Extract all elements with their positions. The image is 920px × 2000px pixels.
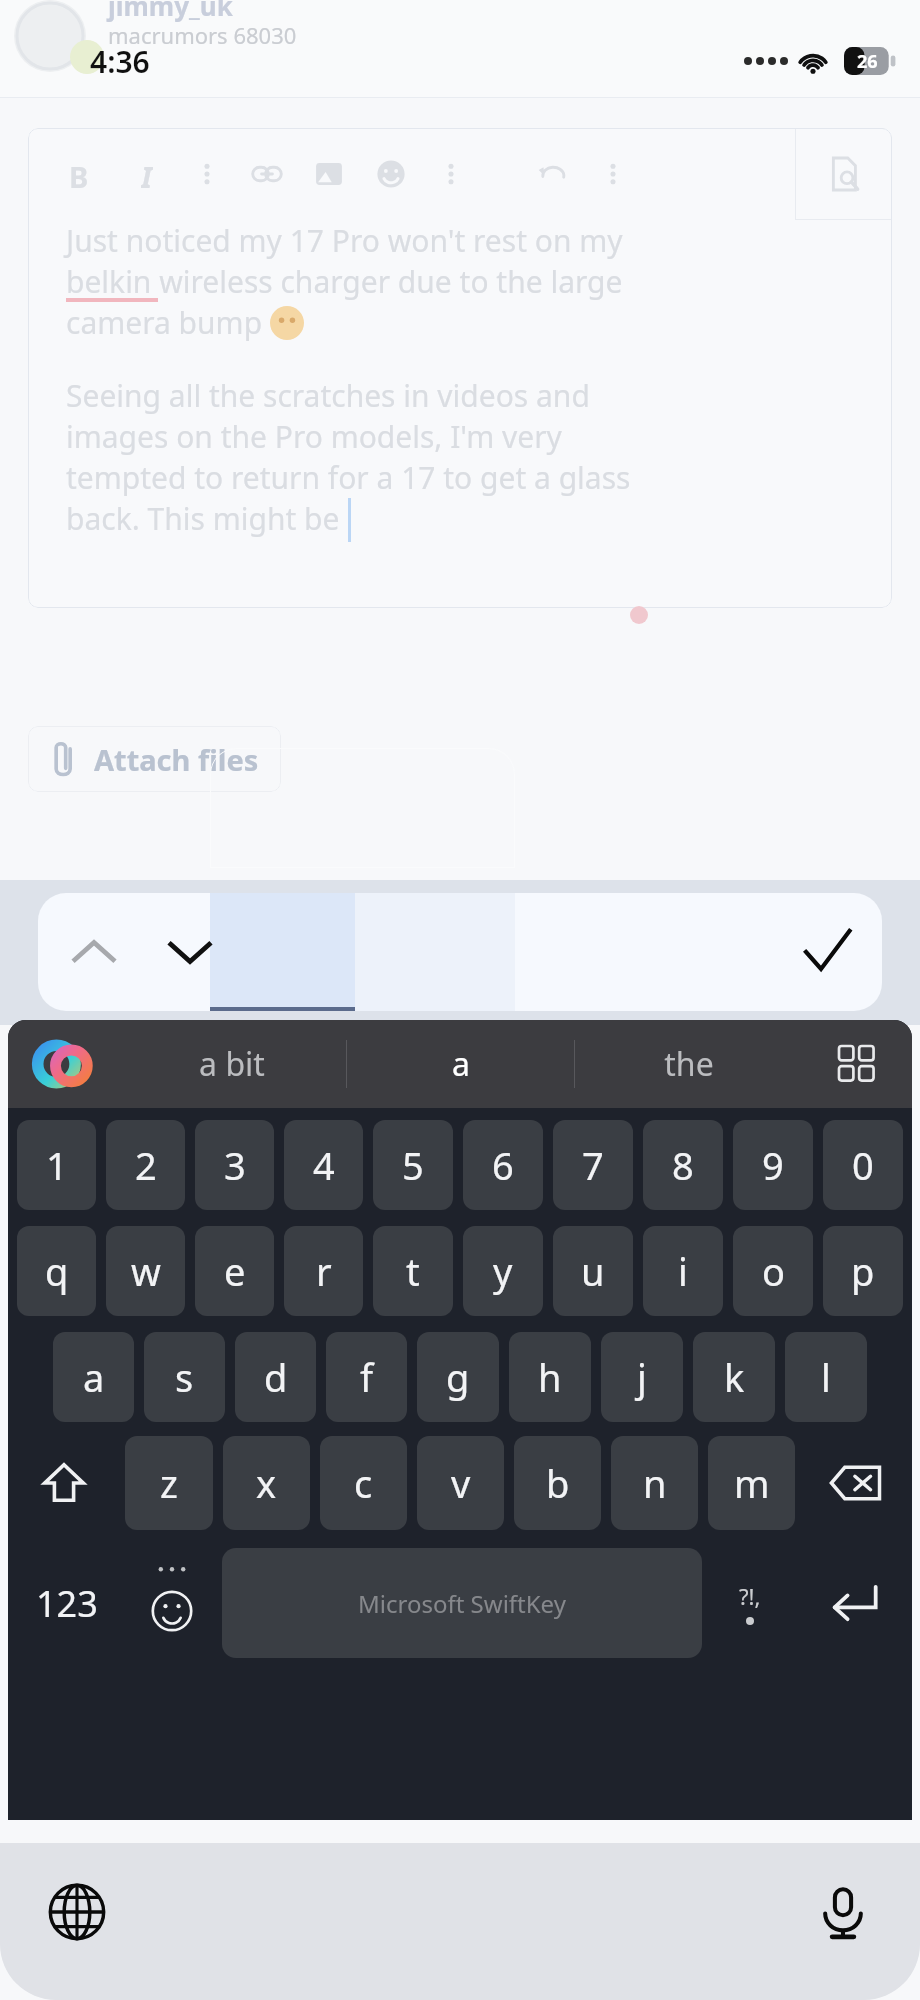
staticText: f	[360, 1351, 374, 1403]
button[interactable]: Microsoft SwiftKey	[222, 1548, 702, 1658]
button[interactable]: y	[463, 1226, 543, 1316]
button[interactable]: e	[195, 1226, 274, 1316]
button[interactable]: 2	[106, 1120, 185, 1210]
button[interactable]: Insert link	[246, 153, 288, 195]
button[interactable]: Voice input	[788, 1857, 898, 1967]
button[interactable]: 7	[553, 1120, 633, 1210]
button[interactable]: Emoji	[122, 1544, 222, 1662]
button[interactable]: k	[693, 1332, 775, 1422]
staticText: g	[446, 1351, 470, 1403]
button[interactable]: Insert image	[308, 153, 350, 195]
button[interactable]: Shift	[8, 1436, 120, 1530]
staticText: w	[131, 1245, 161, 1297]
button[interactable]: Enter	[798, 1544, 908, 1662]
staticText: p	[851, 1245, 875, 1297]
button[interactable]: s	[144, 1332, 225, 1422]
button[interactable]: Previous	[46, 893, 142, 1011]
button[interactable]: Backspace	[800, 1436, 912, 1530]
button[interactable]: a	[53, 1332, 134, 1422]
staticText: macrumors 68030	[108, 20, 297, 50]
staticText: a bit	[199, 1042, 265, 1086]
button[interactable]: m	[708, 1436, 795, 1530]
staticText: r	[316, 1245, 332, 1297]
staticText: v	[451, 1457, 471, 1509]
staticText: j	[637, 1351, 647, 1403]
staticText: jimmy_uk	[108, 0, 233, 23]
button[interactable]: r	[284, 1226, 363, 1316]
staticText: the	[664, 1042, 714, 1086]
button[interactable]: n	[611, 1436, 698, 1530]
button[interactable]: Attach files	[28, 726, 281, 792]
staticText: y	[493, 1245, 513, 1297]
button[interactable]: 0	[823, 1120, 903, 1210]
staticText: 3	[224, 1139, 246, 1191]
button[interactable]: Italic	[126, 153, 168, 195]
button[interactable]: t	[373, 1226, 453, 1316]
button[interactable]: 1	[17, 1120, 96, 1210]
staticText: camera bump	[66, 302, 270, 343]
button[interactable]: the	[575, 1020, 802, 1108]
staticText: h	[538, 1351, 562, 1403]
button[interactable]: b	[514, 1436, 601, 1530]
staticText: Seeing all the scratches in videos and	[66, 375, 590, 416]
staticText: B	[69, 157, 89, 191]
button[interactable]: 8	[643, 1120, 723, 1210]
button[interactable]: 5	[373, 1120, 453, 1210]
staticText: n	[643, 1457, 667, 1509]
button[interactable]: a	[347, 1020, 574, 1108]
button[interactable]: i	[643, 1226, 723, 1316]
staticText: I	[141, 157, 153, 191]
button[interactable]: u	[553, 1226, 633, 1316]
button[interactable]: Insert emoji	[370, 153, 412, 195]
staticText: 26	[857, 49, 878, 74]
staticText: belkin wireless charger due to the large	[66, 261, 623, 302]
button[interactable]: 3	[195, 1120, 274, 1210]
button[interactable]: q	[17, 1226, 96, 1316]
button[interactable]: 6	[463, 1120, 543, 1210]
button[interactable]: 4	[284, 1120, 363, 1210]
staticText: Microsoft SwiftKey	[358, 1587, 566, 1620]
staticText: c	[354, 1457, 373, 1509]
staticText: a	[452, 1042, 470, 1086]
button[interactable]: g	[417, 1332, 499, 1422]
button[interactable]: o	[733, 1226, 813, 1316]
staticText: 123	[36, 1579, 98, 1628]
button[interactable]: Next	[142, 893, 238, 1011]
button[interactable]: w	[106, 1226, 185, 1316]
button[interactable]: More text options	[186, 153, 228, 195]
staticText: 6	[492, 1139, 514, 1191]
button[interactable]: x	[223, 1436, 310, 1530]
staticText: images on the Pro models, I'm very	[66, 416, 562, 457]
button[interactable]: Preview	[795, 128, 892, 220]
button[interactable]: More insert options	[430, 153, 472, 195]
staticText: o	[762, 1245, 785, 1297]
staticText: e	[224, 1245, 246, 1297]
button[interactable]: z	[125, 1436, 213, 1530]
button[interactable]: Symbols	[702, 1544, 798, 1662]
staticText: l	[821, 1351, 831, 1403]
staticText: m	[734, 1457, 770, 1509]
button[interactable]: Done	[772, 893, 882, 1011]
staticText: Just noticed my 17 Pro won't rest on my	[66, 220, 623, 261]
button[interactable]: f	[326, 1332, 407, 1422]
button[interactable]: p	[823, 1226, 903, 1316]
button[interactable]: More	[592, 153, 634, 195]
button[interactable]: c	[320, 1436, 407, 1530]
staticText: ?!,	[739, 1581, 761, 1611]
staticText: z	[160, 1457, 178, 1509]
button[interactable]: Change keyboard language	[22, 1857, 132, 1967]
button[interactable]: d	[235, 1332, 316, 1422]
staticText: tempted to return for a 17 to get a glas…	[66, 457, 631, 498]
staticText: 4:36	[90, 41, 150, 82]
button[interactable]: Undo	[532, 153, 574, 195]
button[interactable]: 9	[733, 1120, 813, 1210]
staticText: 9	[762, 1139, 784, 1191]
button[interactable]: Toolbar	[802, 1020, 912, 1108]
button[interactable]: a bit	[118, 1020, 346, 1108]
button[interactable]: h	[509, 1332, 591, 1422]
button[interactable]: 123	[12, 1544, 122, 1662]
button[interactable]: j	[601, 1332, 683, 1422]
button[interactable]: l	[785, 1332, 867, 1422]
button[interactable]: Bold	[58, 153, 100, 195]
button[interactable]: v	[417, 1436, 504, 1530]
